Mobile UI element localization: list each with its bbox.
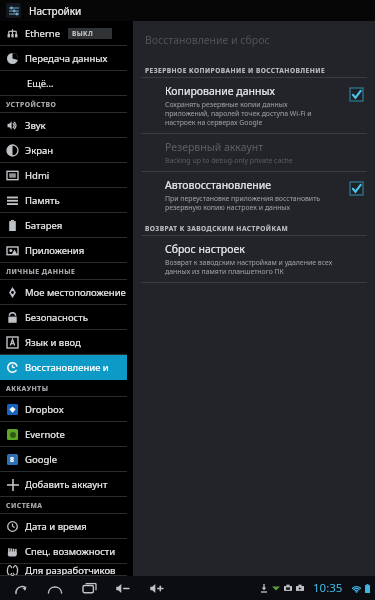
button[interactable]: Volume down	[106, 577, 140, 599]
button[interactable]: Toggle	[350, 182, 363, 195]
button[interactable]: Язык и ввод	[0, 330, 127, 355]
staticText: Hdmi	[25, 169, 50, 182]
staticText: УСТРОЙСТВО	[6, 100, 57, 109]
button[interactable]: Память	[0, 188, 127, 213]
button[interactable]: Передача данных	[0, 46, 127, 71]
button[interactable]: Автовосстановление	[133, 172, 375, 218]
button[interactable]: Evernote	[0, 422, 127, 447]
button[interactable]: Hdmi	[0, 163, 127, 188]
staticText: Evernote	[25, 428, 65, 441]
button[interactable]: Home	[38, 577, 72, 599]
staticText: Звук	[25, 119, 46, 132]
staticText: Сохранять резервные копии данных приложе…	[165, 100, 312, 127]
staticText: Экран	[25, 144, 54, 157]
button[interactable]: 8	[0, 447, 127, 472]
staticText: Мое местоположение	[25, 286, 126, 299]
staticText: Язык и ввод	[25, 336, 81, 349]
button[interactable]: Сброс настроек	[133, 236, 375, 283]
staticText: 8	[10, 455, 15, 465]
button[interactable]: Dropbox	[0, 397, 127, 422]
staticText: Восстановление и сброс	[25, 361, 127, 374]
button[interactable]: Восстановление и сброс	[0, 355, 127, 380]
button[interactable]: Дата и время	[0, 514, 127, 539]
staticText: Передача данных	[25, 52, 108, 65]
button[interactable]: Toggle	[350, 88, 363, 101]
button[interactable]: Звук	[0, 113, 127, 138]
staticText: Backing up to debug-only private cache	[165, 156, 293, 165]
staticText: Добавить аккаунт	[25, 478, 108, 491]
staticText: РЕЗЕРВНОЕ КОПИРОВАНИЕ И ВОССТАНОВЛЕНИЕ	[145, 66, 326, 75]
staticText: Безопасность	[25, 311, 88, 324]
staticText: АККАУНТЫ	[6, 384, 49, 393]
button[interactable]: Для разработчиков	[0, 564, 127, 576]
staticText: При переустановке приложения восстановит…	[165, 194, 321, 212]
staticText: Приложения	[25, 244, 85, 257]
button[interactable]: Back	[4, 577, 38, 599]
staticText: Сброс настроек	[165, 242, 245, 256]
button[interactable]: Мое местоположение	[0, 280, 127, 305]
button[interactable]: Добавить аккаунт	[0, 472, 127, 497]
staticText: Ещё…	[27, 77, 54, 90]
staticText: Батарея	[25, 219, 63, 232]
staticText: Dropbox	[25, 403, 64, 416]
staticText: Etherne	[25, 27, 61, 40]
staticText: Спец. возможности	[25, 545, 116, 558]
button[interactable]: Спец. возможности	[0, 539, 127, 564]
button[interactable]: Копирование данных	[133, 78, 375, 134]
staticText: Память	[25, 194, 60, 207]
staticText: Дата и время	[25, 520, 87, 533]
staticText: ВЫКЛ	[72, 29, 94, 38]
button[interactable]: Резервный аккаунт	[133, 134, 375, 172]
button[interactable]: Безопасность	[0, 305, 127, 330]
button[interactable]: Экран	[0, 138, 127, 163]
staticText: Автовосстановление	[165, 178, 271, 192]
staticText: ВОЗВРАТ К ЗАВОДСКИМ НАСТРОЙКАМ	[145, 224, 289, 233]
staticText: СИСТЕМА	[6, 501, 43, 510]
button[interactable]: Volume up	[140, 577, 174, 599]
staticText: Google	[25, 453, 58, 466]
staticText: Восстановление и сброс	[145, 33, 270, 47]
staticText: Резервный аккаунт	[165, 140, 264, 154]
staticText: ЛИЧНЫЕ ДАННЫЕ	[6, 267, 76, 276]
staticText: Копирование данных	[165, 84, 275, 98]
staticText: Настройки	[29, 4, 82, 18]
button[interactable]: Recent apps	[72, 577, 106, 599]
staticText: 10:35	[313, 580, 343, 596]
button[interactable]: Etherne	[0, 21, 127, 46]
staticText: Для разработчиков	[25, 564, 116, 576]
button[interactable]: Приложения	[0, 238, 127, 263]
staticText: Возврат к заводским настройкам и удалени…	[165, 258, 333, 276]
button[interactable]: Ещё…	[0, 71, 127, 96]
button[interactable]: Батарея	[0, 213, 127, 238]
